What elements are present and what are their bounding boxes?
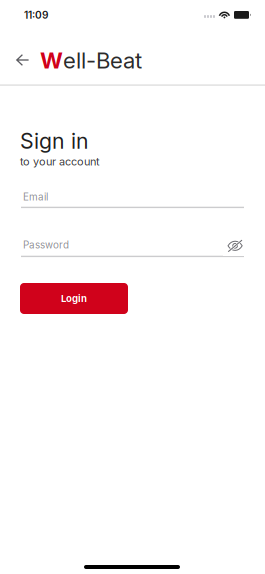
staticText: Password bbox=[23, 239, 69, 251]
staticText: ell-Beat bbox=[63, 47, 142, 74]
button[interactable]: Back bbox=[9, 45, 35, 75]
staticText: Email bbox=[23, 191, 48, 203]
staticText: to your account bbox=[20, 155, 100, 168]
staticText: W bbox=[40, 47, 63, 74]
button[interactable]: Login bbox=[20, 283, 128, 314]
staticText: 11:09 bbox=[24, 9, 48, 21]
button[interactable]: Show password bbox=[223, 236, 247, 256]
staticText: Login bbox=[61, 293, 87, 304]
staticText: Sign in bbox=[20, 128, 89, 154]
